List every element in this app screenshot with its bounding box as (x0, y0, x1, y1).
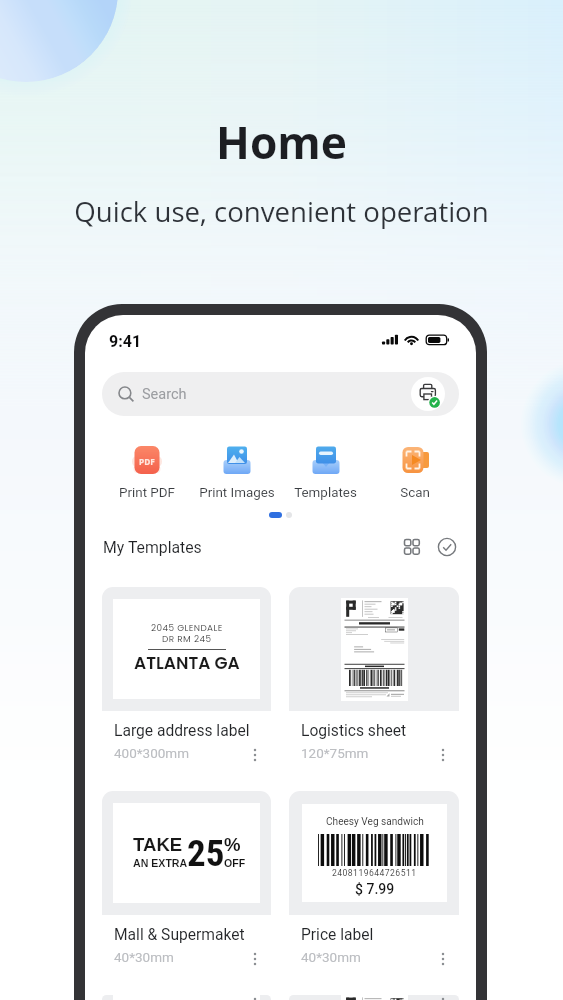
staticText: 120*75mm (301, 745, 369, 761)
staticText: PDF (139, 456, 155, 467)
button[interactable]: Templates (281, 444, 370, 501)
staticText: DR RM 245 (162, 633, 212, 645)
button[interactable]: TAKE (102, 791, 271, 979)
button[interactable]: More options (245, 949, 265, 969)
staticText: Price label (301, 926, 374, 944)
staticText: TAKE (133, 834, 183, 855)
staticText: Scan (400, 485, 430, 501)
staticText: Mall & Supermaket (114, 926, 245, 944)
staticText: My Templates (103, 538, 202, 557)
button[interactable]: More options (245, 745, 265, 765)
staticText: 40*30mm (301, 949, 361, 965)
button[interactable]: Logistics sheet (289, 995, 459, 1000)
staticText: $ 7.99 (355, 881, 395, 897)
staticText: 400*300mm (114, 745, 190, 761)
button[interactable]: Scan (370, 444, 459, 501)
staticText: 9:41 (109, 332, 142, 351)
staticText: Search (142, 386, 187, 403)
staticText: Large address label (114, 722, 250, 740)
button[interactable]: Search (102, 372, 459, 416)
staticText: OFF (224, 857, 246, 869)
staticText: 2045 GLENDALE (151, 622, 223, 634)
staticText: Logistics sheet (301, 722, 407, 740)
button[interactable]: Print Images (192, 444, 281, 501)
staticText: AN EXTRA (133, 857, 188, 869)
staticText: 2408119644726511 (332, 868, 417, 878)
button[interactable]: 2045 GLENDALE (102, 995, 271, 1000)
button[interactable]: Connected printer (411, 377, 445, 411)
button[interactable]: More options (433, 745, 453, 765)
staticText: Home (216, 112, 347, 172)
button[interactable]: 2045 GLENDALE (102, 587, 271, 775)
staticText: Quick use, convenient operation (74, 192, 489, 230)
button[interactable]: PDF (102, 444, 192, 501)
staticText: 25 (187, 832, 225, 875)
button[interactable]: Grid view (401, 536, 423, 558)
staticText: Cheesy Veg sandwich (326, 816, 424, 828)
staticText: 40*30mm (114, 949, 174, 965)
button[interactable]: Select all (436, 536, 458, 558)
staticText: Print PDF (119, 485, 175, 501)
button[interactable]: Cheesy Veg sandwich (289, 791, 459, 979)
button[interactable]: More options (433, 949, 453, 969)
staticText: % (224, 834, 241, 855)
button[interactable]: Logistics sheet (289, 587, 459, 775)
staticText: Print Images (199, 485, 275, 501)
staticText: Templates (294, 485, 357, 501)
staticText: ATLANTA GA (134, 651, 240, 675)
